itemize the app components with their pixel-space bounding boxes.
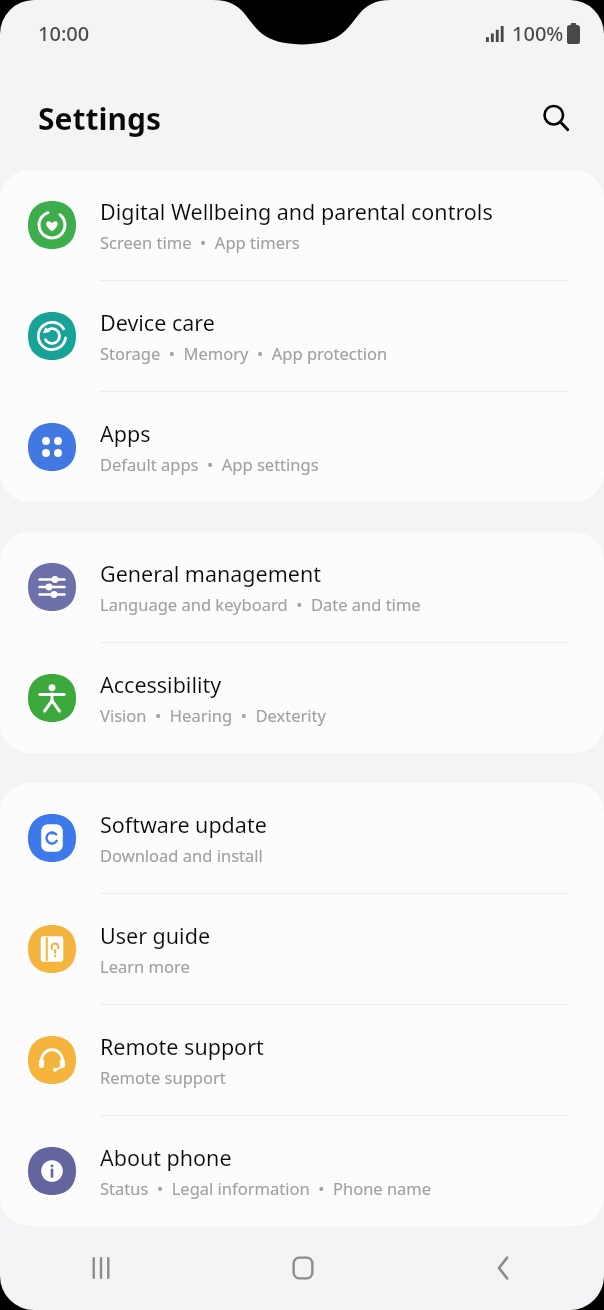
button[interactable]: About phone <box>0 1116 604 1226</box>
button[interactable]: General management <box>0 532 604 643</box>
staticText: Screen time • App timers <box>100 231 300 253</box>
staticText: Accessibility <box>100 670 222 699</box>
staticText: Device care <box>100 308 215 337</box>
staticText: General management <box>100 559 321 588</box>
button[interactable]: Software update <box>0 783 604 894</box>
button[interactable]: User guide <box>0 894 604 1005</box>
staticText: Remote support <box>100 1066 226 1088</box>
staticText: Apps <box>100 419 151 448</box>
staticText: Language and keyboard • Date and time <box>100 593 421 615</box>
button[interactable]: Home <box>202 1226 403 1310</box>
staticText: Status • Legal information • Phone name <box>100 1177 432 1199</box>
staticText: Digital Wellbeing and parental controls <box>100 197 493 226</box>
staticText: User guide <box>100 921 211 950</box>
staticText: 10:00 <box>38 20 90 47</box>
button[interactable]: Accessibility <box>0 643 604 753</box>
staticText: Settings <box>38 98 161 139</box>
button[interactable]: Digital Wellbeing and parental controls <box>0 170 604 281</box>
button[interactable]: Search <box>534 96 578 140</box>
button[interactable]: Apps <box>0 392 604 502</box>
staticText: Storage • Memory • App protection <box>100 342 388 364</box>
button[interactable]: Back <box>403 1226 604 1310</box>
staticText: 100% <box>512 20 564 47</box>
staticText: Learn more <box>100 955 190 977</box>
staticText: Remote support <box>100 1032 264 1061</box>
staticText: Download and install <box>100 844 263 866</box>
staticText: Software update <box>100 810 267 839</box>
staticText: Default apps • App settings <box>100 453 319 475</box>
button[interactable]: Recent apps <box>0 1226 202 1310</box>
staticText: About phone <box>100 1143 232 1172</box>
staticText: Vision • Hearing • Dexterity <box>100 704 326 726</box>
button[interactable]: Device care <box>0 281 604 392</box>
button[interactable]: Remote support <box>0 1005 604 1116</box>
